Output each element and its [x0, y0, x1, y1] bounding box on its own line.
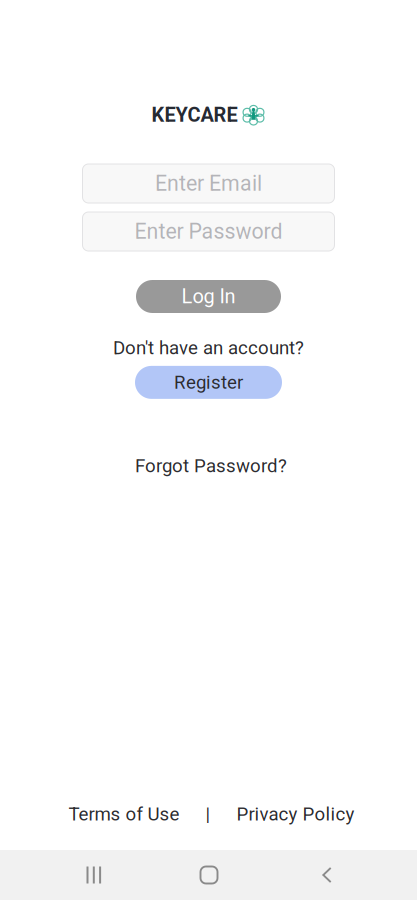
button[interactable]: Enter Email [82, 164, 334, 203]
staticText: Register [174, 371, 243, 393]
staticText: KEYCARE [151, 103, 237, 127]
button[interactable]: Terms of Use [68, 803, 179, 825]
staticText: Log In [181, 285, 235, 308]
button[interactable]: Enter Password [82, 212, 334, 251]
staticText: Enter Password [134, 219, 282, 244]
button[interactable]: Register [135, 366, 282, 399]
button[interactable]: Home [161, 850, 257, 900]
staticText: Don't have an account? [113, 337, 304, 359]
button[interactable]: Privacy Policy [236, 803, 354, 825]
staticText: Privacy Policy [236, 803, 354, 825]
button[interactable]: Back [279, 850, 375, 900]
button[interactable]: Forgot Password? [130, 455, 287, 477]
button[interactable]: Recent apps [46, 850, 142, 900]
staticText: Terms of Use [68, 803, 179, 825]
button[interactable]: Log In [136, 280, 281, 313]
staticText: Forgot Password? [135, 455, 287, 477]
staticText: | [205, 803, 210, 825]
staticText: Enter Email [155, 171, 262, 196]
